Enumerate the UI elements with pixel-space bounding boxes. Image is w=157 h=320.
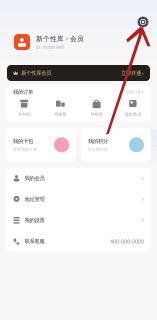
button[interactable]: 我的卡包 — [6, 128, 76, 162]
button[interactable]: 新个性库 · 会员 — [14, 34, 84, 50]
button[interactable]: Settings — [134, 13, 152, 31]
staticText: 我的卡包 — [13, 138, 33, 144]
staticText: 我的设置 — [24, 217, 44, 224]
staticText: 待发货 — [54, 112, 66, 117]
staticText: 查看我的卡券 — [13, 147, 37, 152]
staticText: 新个性库会员 — [21, 70, 51, 76]
staticText: 立即开通 › — [121, 69, 144, 77]
staticText: 新个性库 · 会员 — [36, 34, 84, 43]
staticText: 积分换好礼 — [88, 147, 108, 152]
staticText: 我的订单 — [13, 89, 33, 95]
button[interactable]: 待收货 — [78, 99, 115, 117]
staticText: 400-000-0000 — [110, 238, 144, 245]
staticText: ID: 10 0000 0000 — [36, 44, 64, 50]
staticText: 我的会员 — [24, 175, 44, 182]
staticText: 联系客服 — [24, 238, 44, 245]
button[interactable]: 退款/售后 — [115, 99, 151, 117]
staticText: 全部订单 — [125, 89, 141, 94]
button[interactable]: 我的订单 — [6, 85, 151, 99]
staticText: 退款/售后 — [124, 111, 141, 117]
button[interactable]: 新个性库会员 — [0, 65, 157, 81]
button[interactable]: 待发货 — [42, 99, 78, 117]
staticText: 地址管理 — [24, 196, 44, 203]
button[interactable]: 我的设置 — [6, 210, 151, 231]
button[interactable]: 地址管理 — [6, 189, 151, 210]
button[interactable]: 联系客服 — [6, 231, 151, 252]
staticText: 待付款 — [18, 112, 30, 117]
button[interactable]: 待付款 — [6, 99, 42, 117]
button[interactable]: 我的会员 — [6, 168, 151, 189]
staticText: 我的积分 — [88, 138, 108, 144]
staticText: 待收货 — [91, 112, 103, 117]
button[interactable]: 我的积分 — [81, 128, 151, 162]
